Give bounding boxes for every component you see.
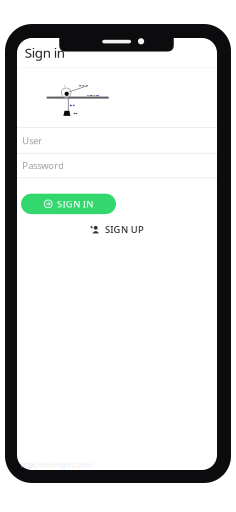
staticText: SIGN UP bbox=[105, 223, 144, 236]
button[interactable]: SIGN UP bbox=[91, 223, 143, 236]
staticText: User bbox=[22, 134, 42, 147]
button[interactable]: SIGN IN bbox=[21, 194, 116, 214]
staticText: SIGN IN bbox=[57, 198, 93, 210]
staticText: Password bbox=[22, 159, 64, 171]
staticText: Sign in bbox=[25, 44, 65, 61]
staticText: https://movingfast.com/ bbox=[21, 461, 93, 469]
